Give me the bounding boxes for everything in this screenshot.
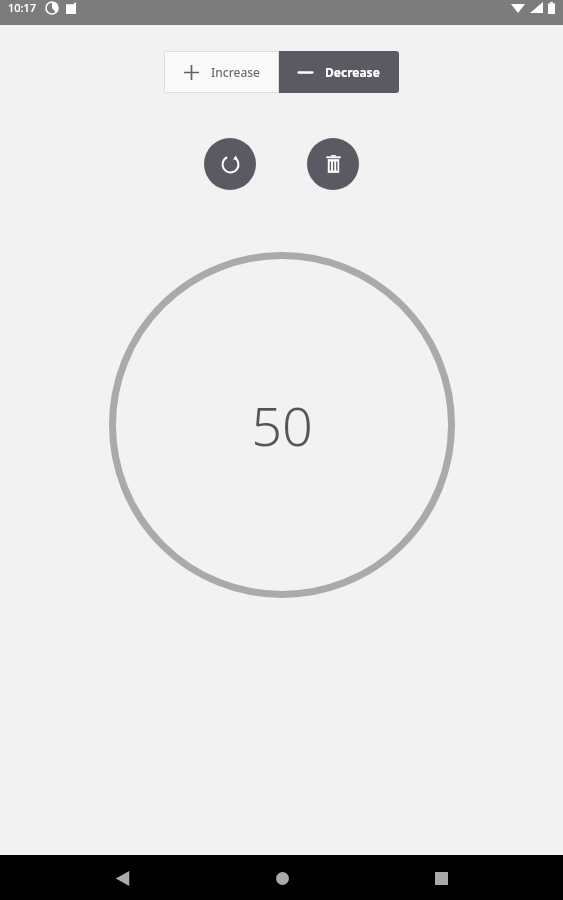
button[interactable]: Home <box>260 856 304 900</box>
button[interactable]: Back <box>100 856 144 900</box>
button[interactable]: Delete <box>307 138 359 190</box>
button[interactable]: Decrease <box>279 51 399 93</box>
staticText: Decrease <box>325 64 380 80</box>
staticText: 50 <box>251 388 313 462</box>
button[interactable]: Recents <box>419 856 463 900</box>
staticText: 10:17 <box>8 0 37 15</box>
button[interactable]: Reset <box>204 138 256 190</box>
staticText: Increase <box>211 64 260 80</box>
button[interactable]: Increase <box>164 51 279 93</box>
